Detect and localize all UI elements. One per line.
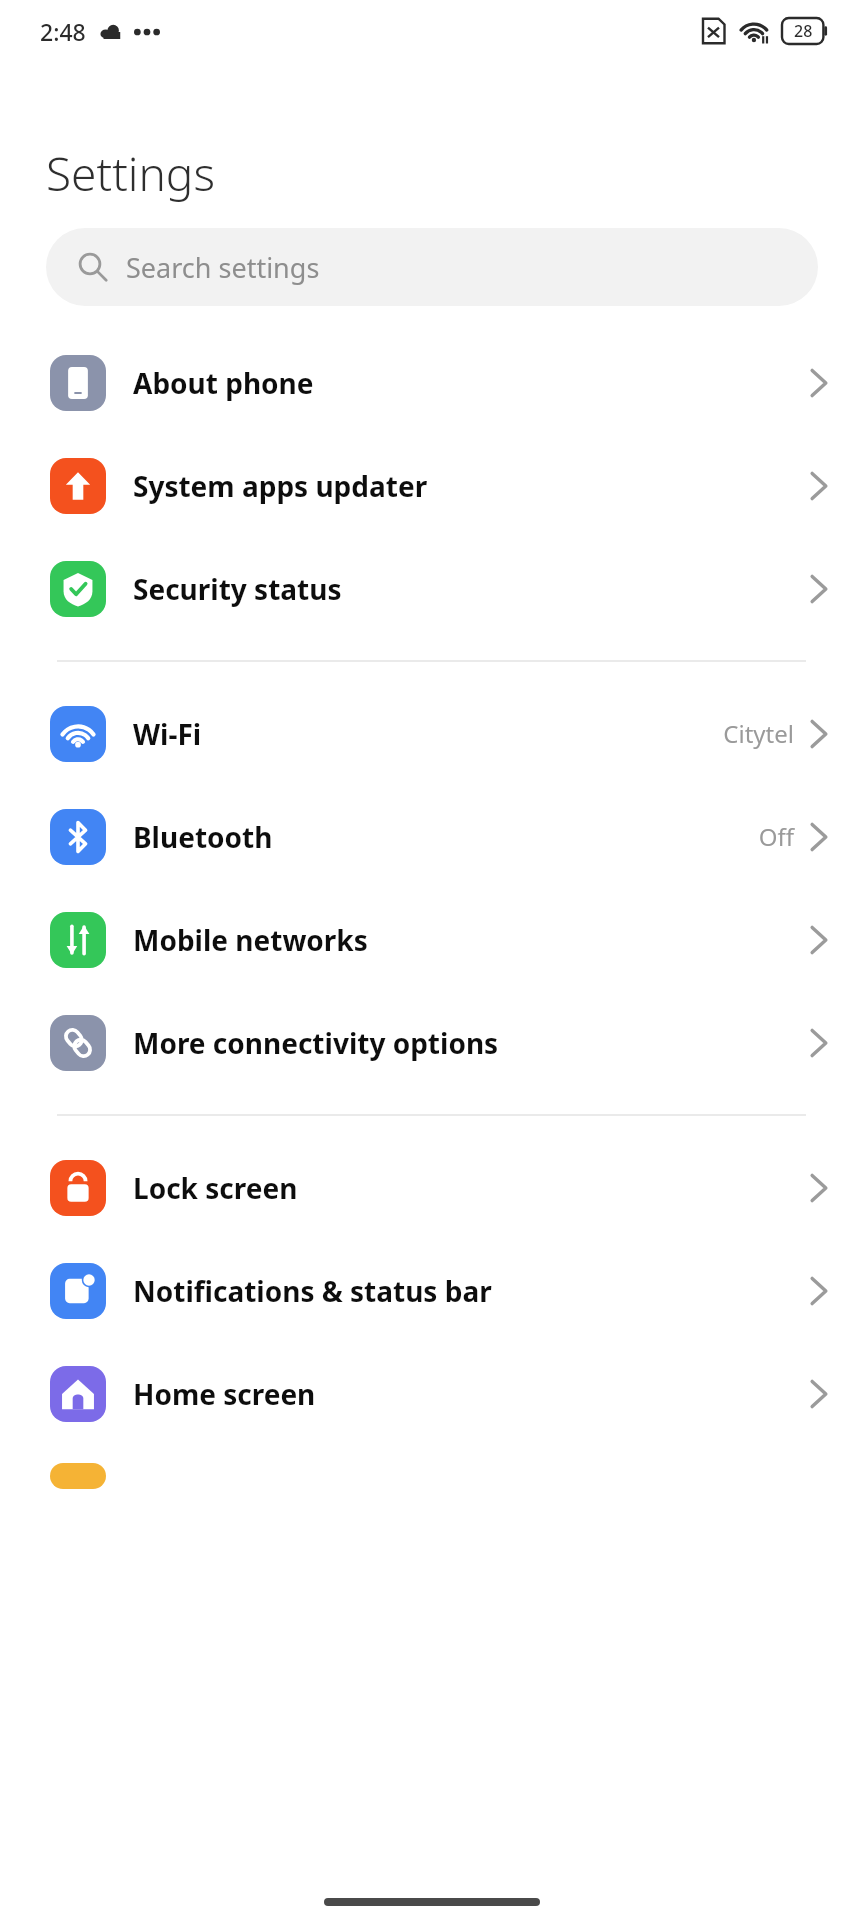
button[interactable]: System apps updater xyxy=(0,434,864,537)
staticText: Citytel xyxy=(723,717,794,750)
staticText: Search settings xyxy=(126,249,320,286)
button[interactable]: Home screen xyxy=(0,1342,864,1445)
button[interactable]: More connectivity options xyxy=(0,991,864,1094)
button[interactable]: Bluetooth xyxy=(0,785,864,888)
staticText: Mobile networks xyxy=(133,921,810,959)
button[interactable]: Notifications & status bar xyxy=(0,1239,864,1342)
staticText: System apps updater xyxy=(133,467,810,505)
staticText: Off xyxy=(758,820,794,853)
button[interactable]: Mobile networks xyxy=(0,888,864,991)
button[interactable]: About phone xyxy=(0,331,864,434)
button[interactable]: Lock screen xyxy=(0,1136,864,1239)
button[interactable]: Search settings xyxy=(46,228,818,306)
staticText: Home screen xyxy=(133,1375,810,1413)
button[interactable]: Wi-Fi xyxy=(0,682,864,785)
staticText: Bluetooth xyxy=(133,818,758,856)
button[interactable]: Security status xyxy=(0,537,864,640)
staticText: 2:48 xyxy=(40,16,86,47)
staticText: Lock screen xyxy=(133,1169,810,1207)
staticText: Security status xyxy=(133,570,810,608)
staticText: Notifications & status bar xyxy=(133,1272,810,1310)
staticText: Settings xyxy=(46,142,215,205)
staticText: About phone xyxy=(133,364,810,402)
staticText: More connectivity options xyxy=(133,1024,810,1062)
staticText: Wi-Fi xyxy=(133,715,723,753)
staticText: 28 xyxy=(794,20,813,42)
